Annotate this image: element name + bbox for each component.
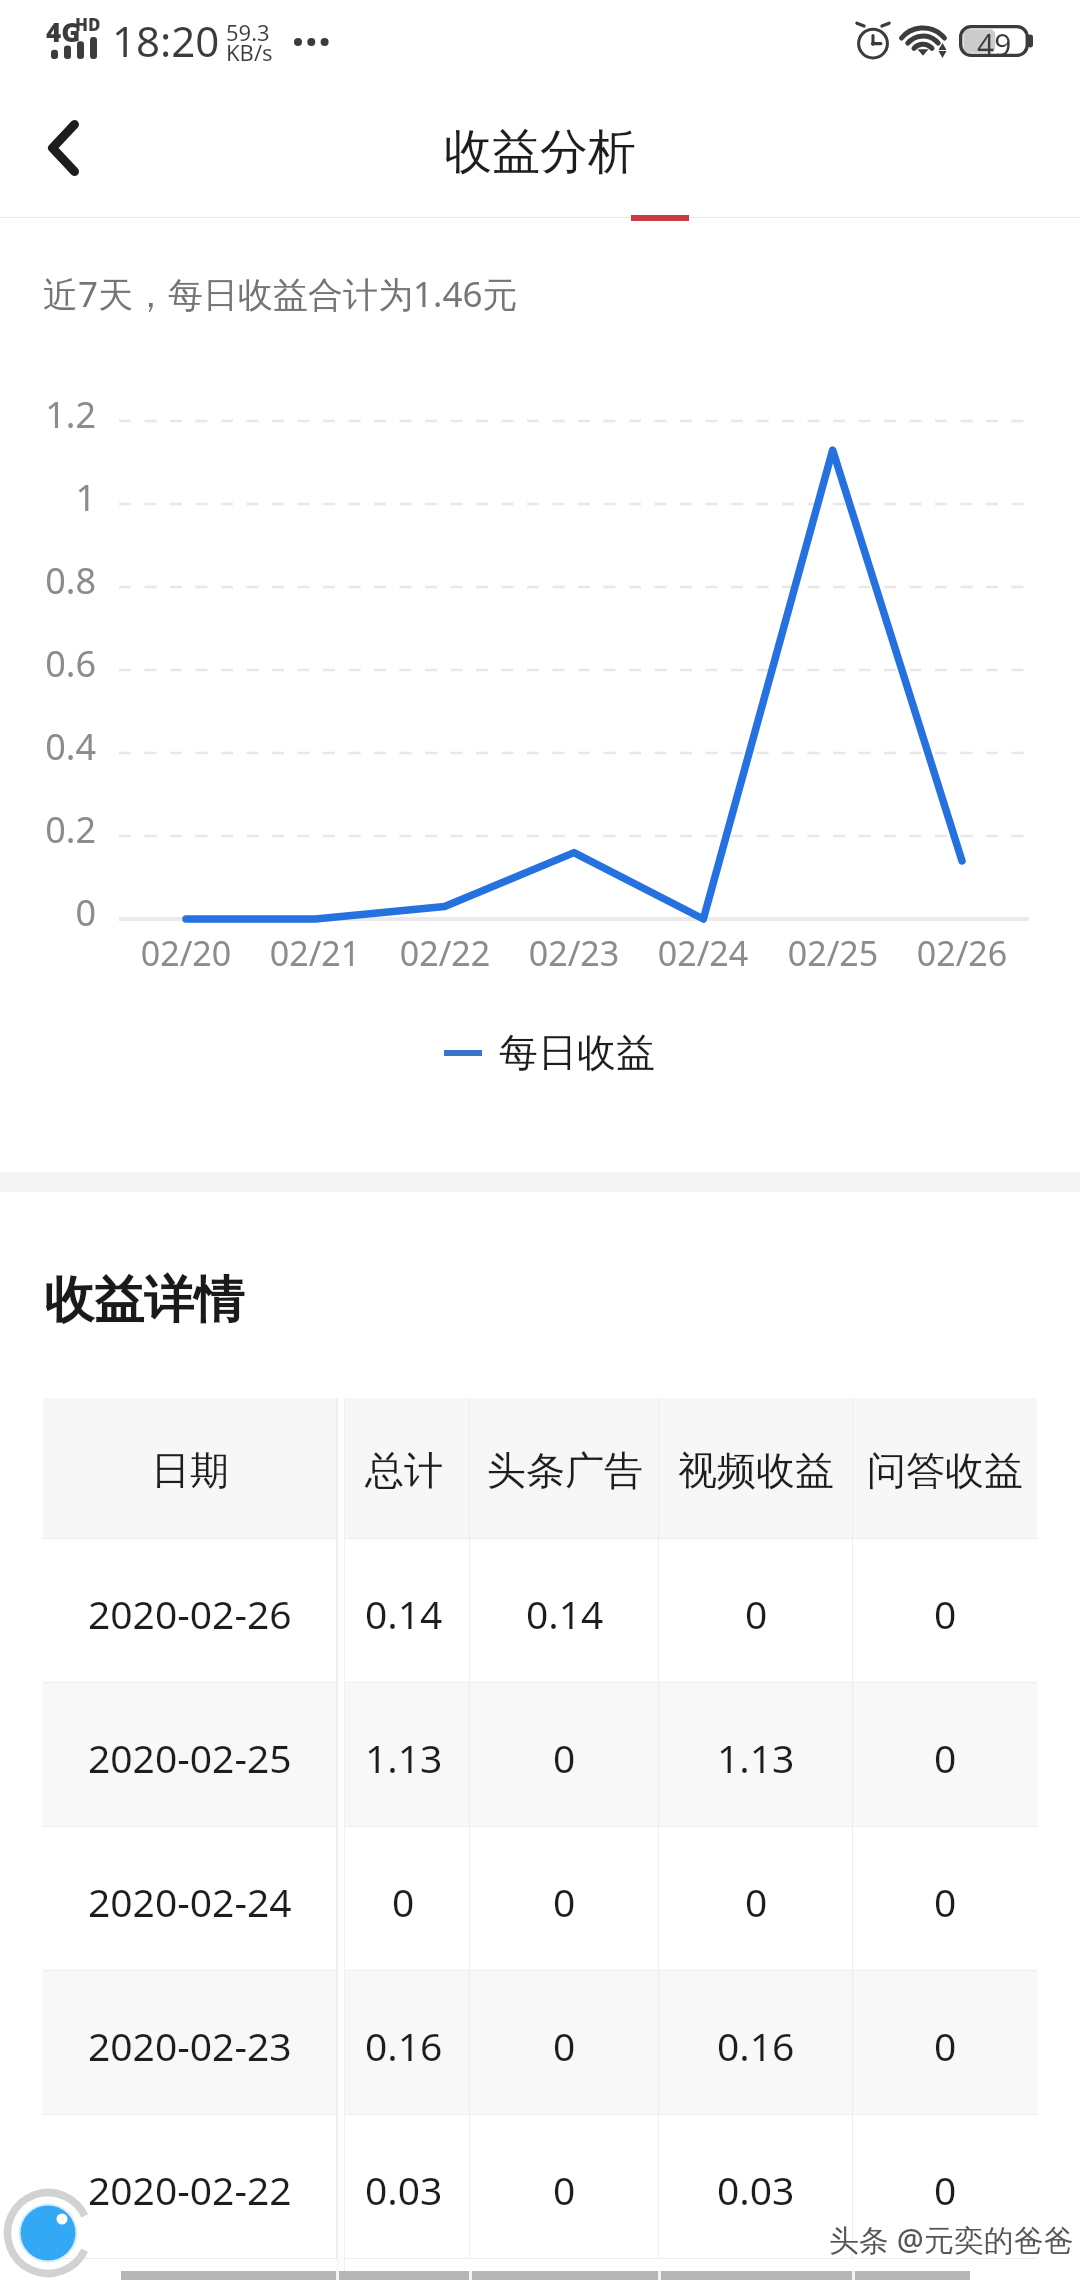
- button[interactable]: Back: [8, 104, 118, 214]
- staticText: 2020-02-26: [88, 1587, 292, 1640]
- staticText: 02/26: [862, 930, 1062, 976]
- staticText: 59.3: [226, 17, 270, 47]
- staticText: 0: [745, 1875, 768, 1928]
- button[interactable]: 2020-02-23: [43, 1971, 1037, 2115]
- staticText: 02/21: [215, 930, 415, 976]
- staticText: 2020-02-24: [88, 1875, 292, 1928]
- staticText: 0: [934, 2019, 957, 2072]
- staticText: 近7天，每日收益合计为1.46元: [43, 270, 518, 318]
- staticText: 0: [934, 1587, 957, 1640]
- staticText: 0.6: [0, 639, 96, 688]
- staticText: 0.14: [526, 1587, 604, 1640]
- staticText: 0: [934, 1875, 957, 1928]
- staticText: 02/23: [474, 930, 674, 976]
- staticText: 2020-02-23: [88, 2019, 292, 2072]
- staticText: 1.13: [717, 1731, 795, 1784]
- staticText: 收益分析: [444, 122, 636, 182]
- button[interactable]: Assistive touch: [4, 2189, 92, 2277]
- staticText: 0: [553, 1875, 576, 1928]
- staticText: 0: [392, 1875, 415, 1928]
- staticText: 1: [0, 473, 96, 522]
- button[interactable]: 2020-02-25: [43, 1683, 1037, 1827]
- staticText: 头条广告: [487, 1446, 643, 1495]
- staticText: 收益详情: [44, 1269, 244, 1332]
- button[interactable]: 日期: [43, 1398, 1037, 1539]
- staticText: 1.13: [365, 1731, 443, 1784]
- staticText: 日期: [151, 1446, 229, 1495]
- staticText: 0.03: [365, 2163, 443, 2216]
- staticText: 问答收益: [867, 1446, 1023, 1495]
- staticText: 0: [553, 2019, 576, 2072]
- staticText: 02/22: [345, 930, 545, 976]
- staticText: 1.2: [0, 390, 96, 439]
- staticText: 每日收益: [499, 1028, 655, 1077]
- staticText: KB/s: [226, 37, 273, 67]
- staticText: 头条 @元奕的爸爸: [829, 2219, 1074, 2260]
- staticText: 0.4: [0, 722, 96, 771]
- button[interactable]: 2020-02-22: [43, 2115, 1037, 2259]
- staticText: 0: [745, 1587, 768, 1640]
- staticText: 02/25: [733, 930, 933, 976]
- staticText: 0.16: [365, 2019, 443, 2072]
- staticText: 2020-02-25: [88, 1731, 292, 1784]
- staticText: 总计: [365, 1446, 443, 1495]
- staticText: 0: [553, 1731, 576, 1784]
- staticText: 18:20: [112, 12, 220, 69]
- staticText: 0.2: [0, 805, 96, 854]
- staticText: 0: [934, 2163, 957, 2216]
- staticText: 0.16: [717, 2019, 795, 2072]
- staticText: 02/24: [603, 930, 803, 976]
- staticText: 02/20: [86, 930, 286, 976]
- staticText: 0.8: [0, 556, 96, 605]
- staticText: HD: [75, 13, 101, 36]
- button[interactable]: 2020-02-26: [43, 1539, 1037, 1683]
- staticText: 0: [934, 1731, 957, 1784]
- staticText: 0.03: [717, 2163, 795, 2216]
- staticText: 0.14: [365, 1587, 443, 1640]
- button[interactable]: 2020-02-24: [43, 1827, 1037, 1971]
- staticText: 4G: [46, 14, 81, 49]
- staticText: 49: [977, 24, 1012, 56]
- staticText: 视频收益: [678, 1446, 834, 1495]
- staticText: 0: [0, 888, 96, 937]
- staticText: 0: [553, 2163, 576, 2216]
- staticText: 2020-02-22: [88, 2163, 292, 2216]
